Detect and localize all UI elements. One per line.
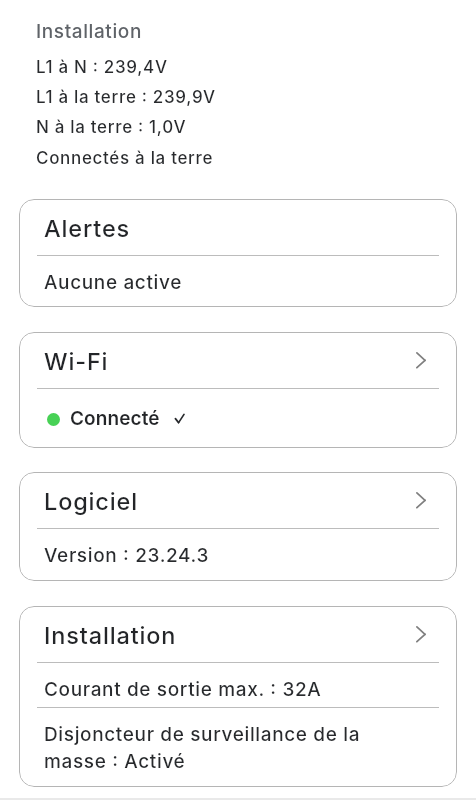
staticText: L1 à la terre : 239,9V [36, 87, 216, 108]
button[interactable]: Wi-Fi [19, 332, 457, 448]
staticText: Wi-Fi [44, 347, 109, 375]
staticText: Connecté [70, 407, 160, 430]
staticText: Installation [36, 20, 142, 43]
button[interactable]: Logiciel [19, 472, 457, 581]
staticText: N à la terre : 1,0V [36, 117, 187, 138]
staticText: Connectés à la terre [36, 148, 214, 169]
staticText: Installation [44, 621, 177, 649]
staticText: Courant de sortie max. : 32A [44, 678, 322, 701]
other: Ouvrir Wi-Fi [407, 348, 431, 372]
staticText: L1 à N : 239,4V [36, 57, 168, 78]
other: Ouvrir Installation [407, 622, 431, 646]
button[interactable]: Installation [19, 606, 457, 787]
staticText: Alertes [44, 214, 131, 242]
other: Ouvrir Logiciel [407, 488, 431, 512]
staticText: Aucune active [44, 271, 182, 294]
staticText: Version : 23.24.3 [44, 544, 210, 567]
staticText: Disjoncteur de surveillance de la masse … [44, 723, 412, 773]
staticText: Logiciel [44, 487, 138, 515]
